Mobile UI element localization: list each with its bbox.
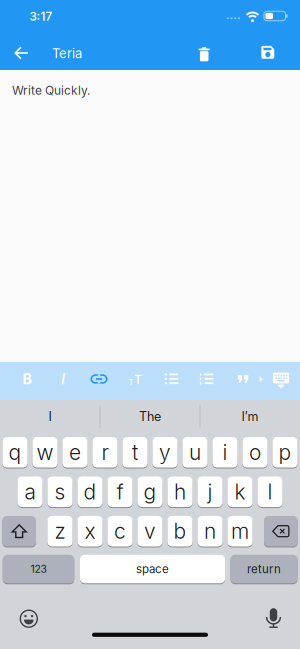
staticText: j: [207, 479, 212, 504]
button[interactable]: u: [182, 437, 208, 468]
staticText: return: [247, 562, 281, 576]
button[interactable]: return: [230, 554, 297, 584]
staticText: e: [69, 440, 81, 465]
button[interactable]: w: [32, 437, 58, 468]
staticText: i: [222, 440, 227, 465]
button[interactable]: g: [137, 476, 163, 508]
button[interactable]: [84, 364, 114, 394]
button[interactable]: I: [48, 364, 78, 394]
staticText: B: [22, 370, 32, 388]
staticText: T: [128, 378, 133, 387]
button[interactable]: I: [2, 401, 98, 431]
staticText: s: [54, 479, 65, 504]
button[interactable]: v: [137, 515, 163, 547]
staticText: The: [139, 409, 161, 424]
button[interactable]: x: [77, 515, 103, 547]
button[interactable]: B: [12, 364, 42, 394]
button[interactable]: b: [167, 515, 193, 547]
button[interactable]: n: [197, 515, 223, 547]
staticText: h: [174, 479, 186, 504]
staticText: x: [84, 518, 95, 544]
staticText: p: [278, 440, 291, 465]
button[interactable]: c: [107, 515, 133, 547]
button[interactable]: e: [62, 437, 88, 468]
staticText: n: [204, 518, 216, 544]
button[interactable]: [264, 515, 298, 547]
staticText: Write Quickly.: [12, 83, 90, 98]
button[interactable]: t: [122, 437, 148, 468]
button[interactable]: [2, 515, 36, 547]
staticText: r: [101, 440, 108, 465]
button[interactable]: m: [227, 515, 253, 547]
button[interactable]: 123: [3, 554, 74, 584]
staticText: v: [144, 518, 156, 544]
staticText: m: [231, 518, 249, 544]
button[interactable]: f: [107, 476, 133, 508]
button[interactable]: q: [2, 437, 28, 468]
button[interactable]: i: [212, 437, 238, 468]
button[interactable]: r: [92, 437, 118, 468]
staticText: space: [136, 562, 169, 576]
button[interactable]: T: [127, 371, 142, 387]
button[interactable]: j: [197, 476, 223, 508]
staticText: b: [173, 518, 186, 544]
staticText: q: [8, 440, 21, 465]
staticText: w: [36, 440, 53, 465]
button[interactable]: [164, 372, 178, 386]
staticText: t: [132, 440, 138, 465]
button[interactable]: o: [242, 437, 268, 468]
button[interactable]: d: [77, 476, 103, 508]
staticText: 123: [30, 563, 46, 575]
staticText: I: [48, 409, 51, 424]
staticText: c: [114, 518, 126, 544]
button[interactable]: [265, 608, 282, 628]
button[interactable]: [20, 610, 38, 627]
staticText: k: [234, 479, 245, 504]
staticText: d: [83, 479, 96, 504]
staticText: I’m: [241, 409, 258, 424]
staticText: z: [54, 518, 65, 544]
button[interactable]: s: [47, 476, 73, 508]
button[interactable]: k: [227, 476, 253, 508]
button[interactable]: [261, 46, 274, 59]
staticText: g: [143, 479, 156, 504]
button[interactable]: [199, 372, 214, 386]
staticText: y: [159, 440, 171, 465]
staticText: T: [134, 372, 142, 387]
button[interactable]: z: [47, 515, 73, 547]
button[interactable]: space: [80, 554, 225, 584]
button[interactable]: [273, 372, 289, 388]
staticText: I: [61, 370, 65, 388]
button[interactable]: h: [167, 476, 193, 508]
staticText: o: [249, 440, 261, 465]
staticText: 3:17: [29, 9, 52, 23]
button[interactable]: p: [272, 437, 298, 468]
button[interactable]: The: [102, 401, 198, 431]
button[interactable]: l: [257, 476, 283, 508]
button[interactable]: [14, 46, 29, 60]
staticText: l: [267, 479, 272, 504]
button[interactable]: a: [17, 476, 43, 508]
staticText: u: [189, 440, 201, 465]
staticText: f: [116, 479, 123, 504]
button[interactable]: [238, 375, 248, 383]
button[interactable]: [198, 45, 210, 59]
staticText: a: [24, 479, 35, 504]
button[interactable]: y: [152, 437, 178, 468]
staticText: Teria: [52, 46, 82, 61]
button[interactable]: I’m: [202, 401, 298, 431]
